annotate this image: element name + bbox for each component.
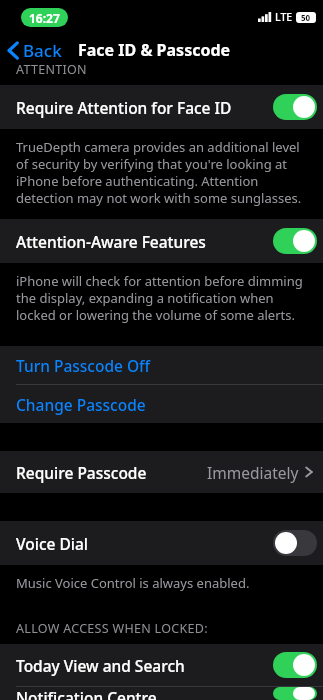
staticText: Require Passcode (16, 462, 147, 483)
staticText: ATTENTION (16, 61, 87, 75)
button[interactable]: Notification Centre (0, 687, 323, 700)
staticText: Immediately (207, 462, 299, 483)
button[interactable]: Today View and Search (0, 644, 323, 686)
staticText: 50 (301, 12, 311, 23)
button[interactable]: Back (0, 39, 68, 62)
button[interactable]: Attention-Aware Features (273, 228, 317, 254)
button[interactable]: Require Attention for Face ID (273, 94, 317, 120)
button[interactable]: Attention-Aware Features (0, 219, 323, 263)
button[interactable]: Voice Dial (273, 530, 317, 556)
button[interactable]: Notification Centre (273, 687, 317, 700)
staticText: Back (23, 39, 62, 62)
staticText: LTE (275, 10, 293, 24)
staticText: Turn Passcode Off (16, 355, 151, 376)
staticText: ALLOW ACCESS WHEN LOCKED: (16, 620, 208, 637)
button[interactable]: Today View and Search (273, 652, 317, 678)
staticText: iPhone will check for attention before d… (16, 272, 309, 324)
staticText: Face ID & Passcode (78, 39, 231, 61)
button[interactable]: Voice Dial (0, 521, 323, 565)
button[interactable]: Require Attention for Face ID (0, 85, 323, 129)
staticText: Today View and Search (16, 655, 185, 676)
staticText: Notification Centre (16, 687, 157, 700)
staticText: Attention-Aware Features (16, 231, 206, 252)
staticText: 16:27 (29, 10, 60, 26)
staticText: Require Attention for Face ID (16, 97, 232, 118)
staticText: Change Passcode (16, 394, 146, 415)
button[interactable]: Change Passcode (0, 385, 323, 423)
staticText: Music Voice Control is always enabled. (16, 574, 250, 592)
staticText: TrueDepth camera provides an additional … (16, 138, 309, 207)
button[interactable]: Turn Passcode Off (0, 346, 323, 384)
staticText: Voice Dial (16, 533, 88, 554)
button[interactable]: Require Passcode (0, 451, 323, 493)
